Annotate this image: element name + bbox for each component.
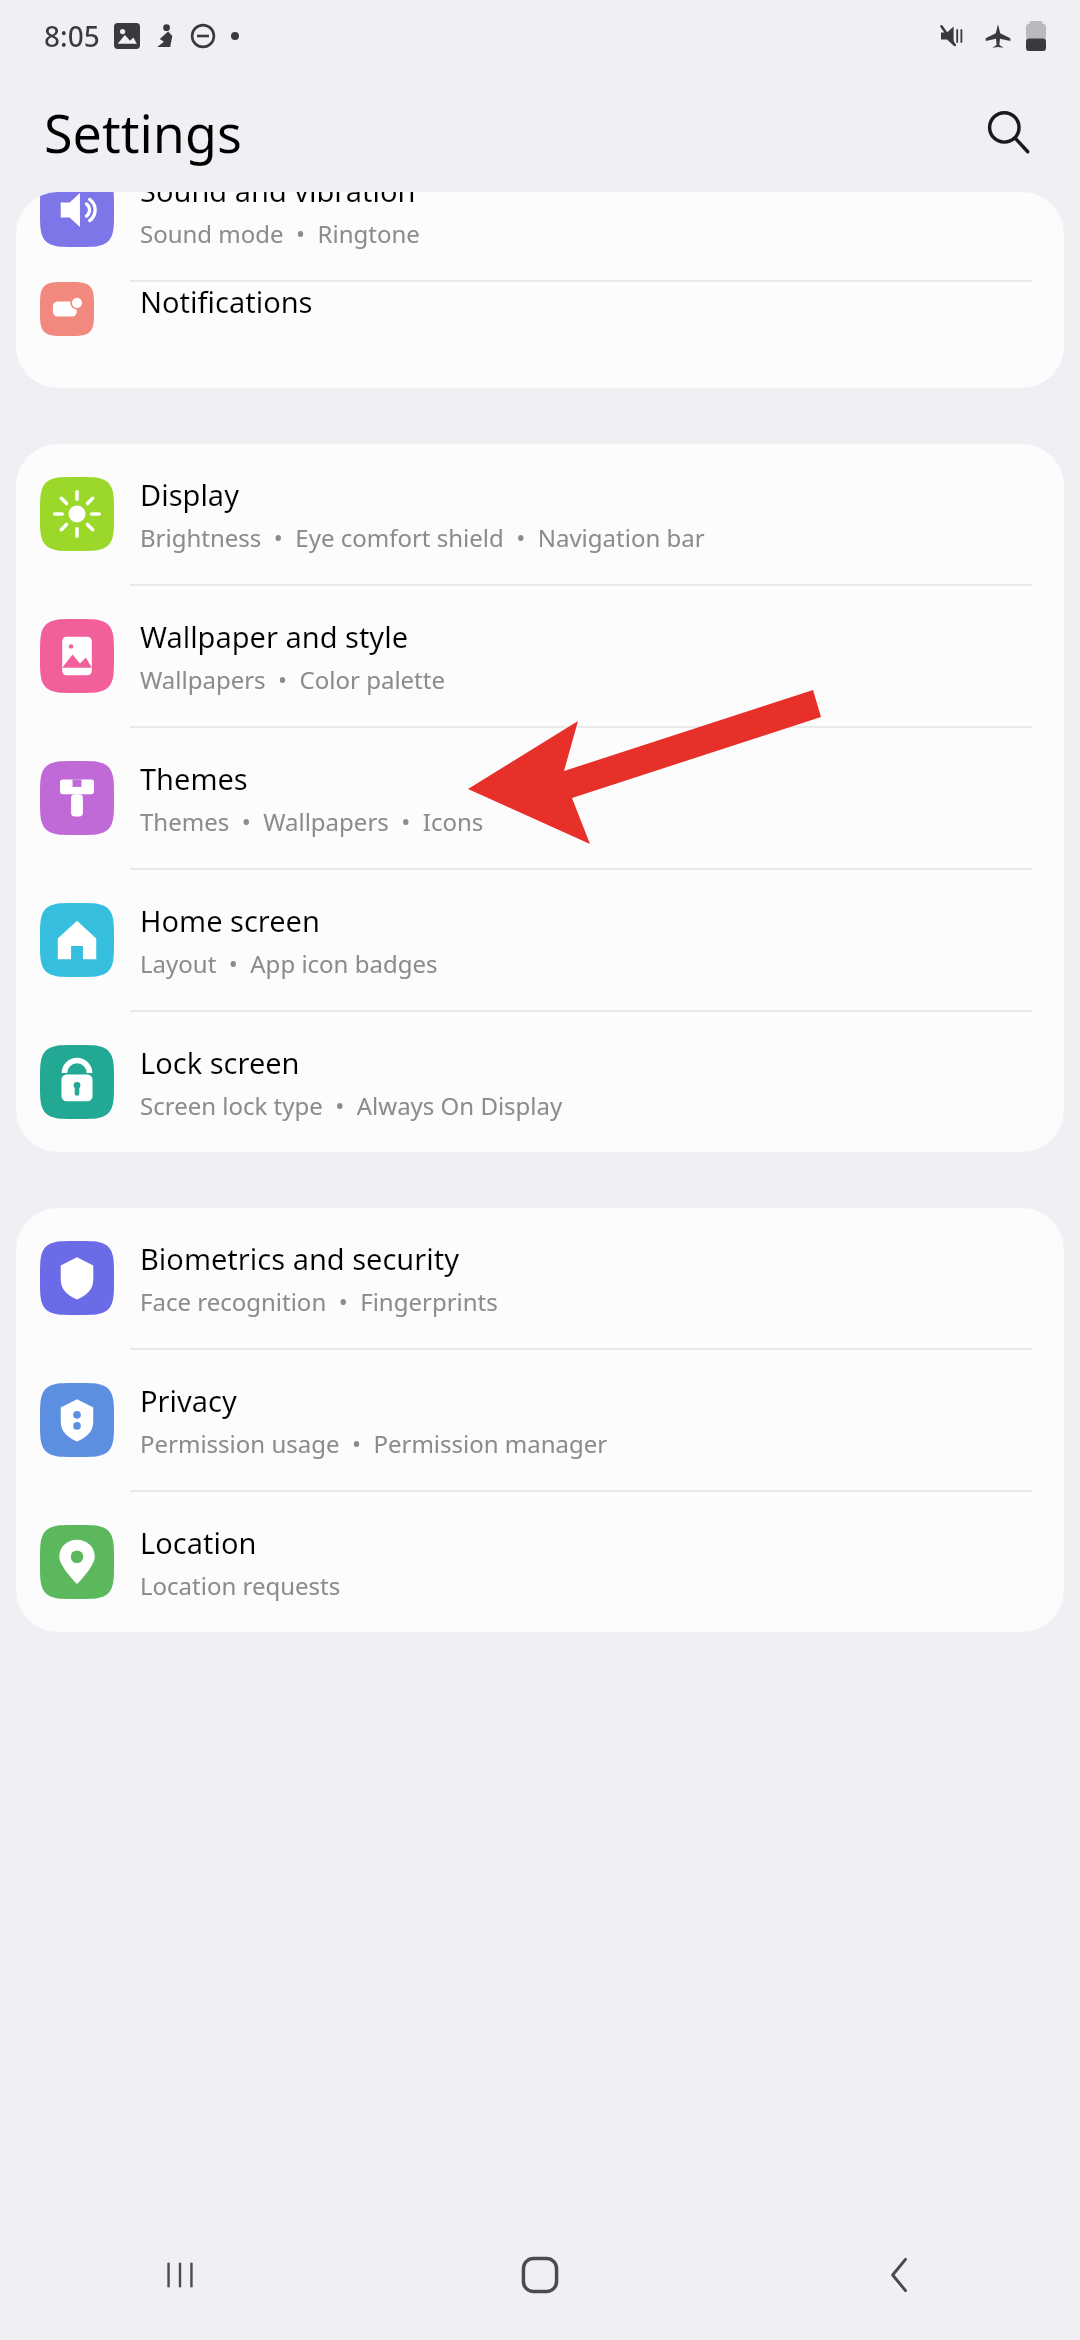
button[interactable]: Home	[360, 2210, 720, 2340]
button[interactable]: Privacy	[16, 1350, 1064, 1492]
staticText: Themes	[140, 759, 248, 798]
button[interactable]: Home screen	[16, 870, 1064, 1012]
button[interactable]: Back	[720, 2210, 1080, 2340]
staticText: Face recognition • Fingerprints	[140, 1285, 498, 1318]
staticText: Permission usage • Permission manager	[140, 1427, 608, 1460]
staticText: Sound and vibration	[140, 192, 416, 210]
button[interactable]: Biometrics and security	[16, 1208, 1064, 1350]
staticText: Lock screen	[140, 1043, 300, 1082]
button[interactable]: Display	[16, 444, 1064, 586]
staticText: Location requests	[140, 1569, 341, 1602]
staticText: Location	[140, 1523, 257, 1562]
staticText: Wallpapers • Color palette	[140, 663, 445, 696]
staticText: Display	[140, 475, 239, 514]
staticText: Biometrics and security	[140, 1239, 460, 1278]
staticText: Layout • App icon badges	[140, 947, 438, 980]
staticText: Settings	[44, 97, 242, 168]
staticText: Sound mode • Ringtone	[140, 217, 420, 250]
staticText: 8:05	[44, 17, 100, 55]
button[interactable]: Wallpaper and style	[16, 586, 1064, 728]
button[interactable]: Lock screen	[16, 1012, 1064, 1152]
button[interactable]: Sound and vibration	[16, 192, 1064, 282]
button[interactable]: Notifications	[16, 282, 1064, 336]
staticText: Notifications	[140, 282, 313, 321]
staticText: Brightness • Eye comfort shield • Naviga…	[140, 521, 705, 554]
staticText: Themes • Wallpapers • Icons	[140, 805, 484, 838]
button[interactable]: Recents	[0, 2210, 360, 2340]
button[interactable]: Search	[972, 96, 1044, 168]
staticText: Privacy	[140, 1381, 237, 1420]
button[interactable]: Location	[16, 1492, 1064, 1632]
staticText: Home screen	[140, 901, 320, 940]
staticText: Screen lock type • Always On Display	[140, 1089, 563, 1122]
button[interactable]: Themes	[16, 728, 1064, 870]
staticText: Wallpaper and style	[140, 617, 408, 656]
